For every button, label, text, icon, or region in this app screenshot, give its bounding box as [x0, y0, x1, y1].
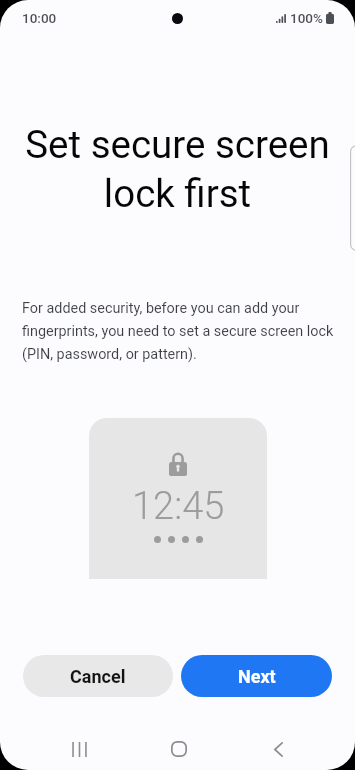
button[interactable]: Cancel [23, 655, 173, 697]
staticText: Next [238, 666, 276, 687]
staticText: 10:00 [22, 10, 57, 26]
button[interactable]: Back [254, 728, 303, 770]
staticText: 100% [290, 10, 323, 26]
button[interactable]: Recent apps [55, 728, 104, 770]
staticText: Set secure screen lock first [20, 122, 335, 216]
button[interactable]: Next [181, 655, 332, 697]
staticText: Cancel [70, 666, 126, 687]
button[interactable]: Home [154, 728, 203, 770]
staticText: 12:45 [132, 484, 225, 529]
staticText: For added security, before you can add y… [22, 300, 334, 363]
